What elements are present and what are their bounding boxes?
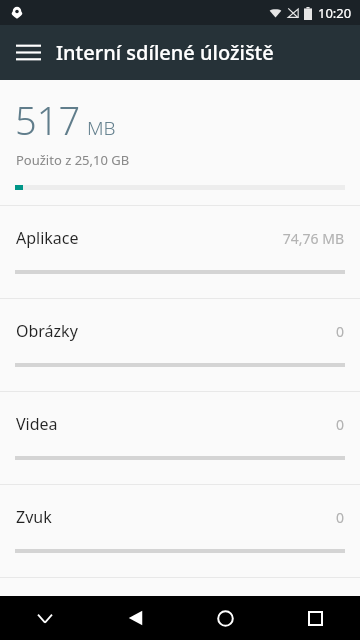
staticText: Obrázky [16, 320, 78, 342]
staticText: 0 [335, 322, 344, 341]
staticText: 74,76 MB [282, 229, 344, 248]
staticText: Aplikace [16, 227, 79, 249]
staticText: Interní sdílené úložiště [56, 39, 274, 66]
staticText: 0 [335, 508, 344, 527]
staticText: 0 [335, 415, 344, 434]
staticText: Videa [16, 413, 58, 435]
button[interactable]: Recent apps [270, 596, 360, 640]
button[interactable]: Videa [0, 391, 360, 484]
staticText: Použito z 25,10 GB [16, 151, 130, 169]
button[interactable]: Aplikace [0, 205, 360, 298]
button[interactable]: Hide keyboard [0, 596, 90, 640]
button[interactable]: Jiné [0, 577, 360, 596]
button[interactable]: Home [180, 596, 270, 640]
button[interactable]: Obrázky [0, 298, 360, 391]
button[interactable]: Zvuk [0, 484, 360, 577]
staticText: 517 [15, 94, 81, 146]
staticText: Zvuk [16, 506, 52, 528]
staticText: MB [87, 115, 116, 141]
button[interactable]: Back [90, 596, 180, 640]
button[interactable]: Open navigation drawer [0, 25, 56, 80]
staticText: 10:20 [318, 4, 352, 22]
